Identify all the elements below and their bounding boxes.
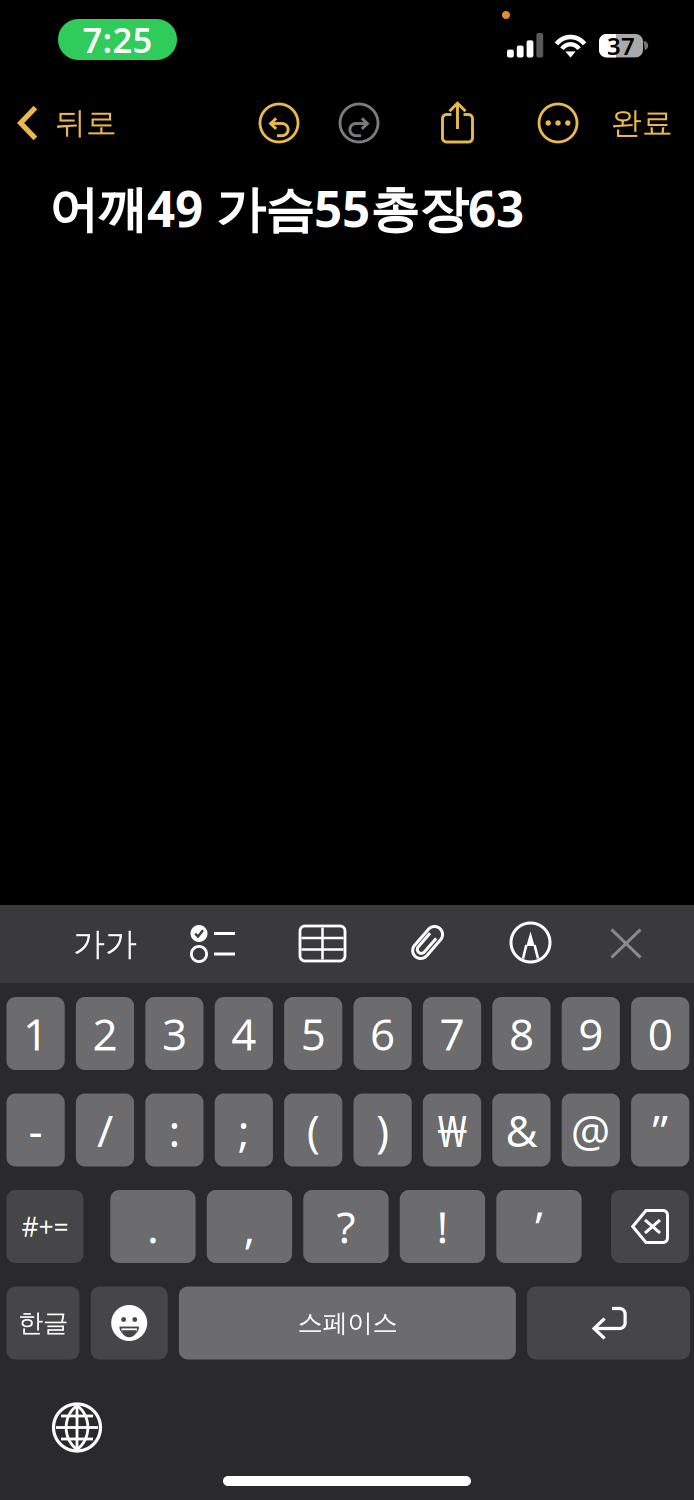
button[interactable]: / xyxy=(76,1093,134,1166)
button[interactable]: 가가 xyxy=(73,921,127,967)
staticText: & xyxy=(505,1101,537,1159)
button[interactable]: ; xyxy=(215,1093,273,1166)
button[interactable]: Emoji xyxy=(91,1286,168,1359)
button[interactable]: 9 xyxy=(562,997,620,1070)
staticText: 5 xyxy=(301,1004,326,1063)
button[interactable]: ) xyxy=(353,1093,412,1166)
button[interactable]: 8 xyxy=(492,997,550,1070)
button[interactable]: Attach xyxy=(410,922,444,963)
staticText: 1 xyxy=(23,1004,48,1063)
staticText: : xyxy=(168,1101,180,1159)
button[interactable]: 2 xyxy=(76,997,134,1070)
button[interactable]: Delete xyxy=(611,1190,689,1263)
staticText: #+= xyxy=(21,1209,68,1244)
staticText: 3 xyxy=(162,1004,187,1063)
button[interactable]: Checklist xyxy=(190,924,236,964)
staticText: 4 xyxy=(231,1004,256,1063)
staticText: 완료 xyxy=(611,104,673,142)
staticText: 8 xyxy=(509,1004,534,1063)
staticText: 어깨49 가슴55총장63 xyxy=(49,175,524,240)
staticText: ₩ xyxy=(437,1101,466,1159)
staticText: 스페이스 xyxy=(297,1307,397,1338)
button[interactable]: ? xyxy=(303,1190,389,1263)
staticText: 37 xyxy=(607,30,635,62)
button[interactable]: & xyxy=(492,1093,550,1166)
button[interactable]: Redo xyxy=(340,104,378,142)
button[interactable]: - xyxy=(6,1093,65,1166)
staticText: 가가 xyxy=(73,924,137,964)
button[interactable]: 4 xyxy=(215,997,273,1070)
staticText: 7:25 xyxy=(82,16,152,62)
staticText: 뒤로 xyxy=(55,104,117,142)
staticText: 한글 xyxy=(18,1307,68,1338)
button[interactable]: Markup xyxy=(511,923,550,962)
staticText: @ xyxy=(571,1101,611,1159)
staticText: / xyxy=(97,1101,113,1159)
button[interactable]: Share xyxy=(441,101,474,144)
button[interactable]: Undo xyxy=(260,104,298,142)
staticText: ) xyxy=(376,1101,389,1159)
button[interactable]: 3 xyxy=(145,997,203,1070)
staticText: ” xyxy=(652,1101,668,1159)
button[interactable]: ( xyxy=(284,1093,342,1166)
button[interactable]: 완료 xyxy=(602,99,682,147)
button[interactable]: 0 xyxy=(631,997,689,1070)
button[interactable]: Close xyxy=(610,928,642,959)
button[interactable]: ! xyxy=(400,1190,485,1263)
button[interactable]: Next keyboard xyxy=(53,1404,100,1451)
staticText: . xyxy=(147,1197,159,1256)
staticText: 0 xyxy=(648,1004,673,1063)
button[interactable]: 1 xyxy=(6,997,65,1070)
button[interactable]: , xyxy=(207,1190,292,1263)
staticText: - xyxy=(29,1101,43,1159)
button[interactable]: ” xyxy=(631,1093,689,1166)
button[interactable]: . xyxy=(110,1190,196,1263)
staticText: 9 xyxy=(578,1004,603,1063)
staticText: ( xyxy=(307,1101,320,1159)
staticText: ! xyxy=(436,1197,448,1256)
staticText: , xyxy=(243,1197,255,1256)
button[interactable]: More xyxy=(539,104,577,142)
button[interactable]: 스페이스 xyxy=(179,1286,516,1359)
button[interactable]: @ xyxy=(562,1093,620,1166)
staticText: 7 xyxy=(439,1004,464,1063)
button[interactable]: Table xyxy=(300,926,345,961)
button[interactable]: 5 xyxy=(284,997,342,1070)
staticText: ’ xyxy=(535,1197,543,1256)
button[interactable]: Return xyxy=(527,1286,690,1359)
button[interactable]: #+= xyxy=(6,1190,83,1263)
staticText: 2 xyxy=(92,1004,117,1063)
staticText: ; xyxy=(238,1101,250,1159)
button[interactable]: 6 xyxy=(353,997,412,1070)
button[interactable]: 뒤로 xyxy=(0,90,131,156)
button[interactable]: : xyxy=(145,1093,203,1166)
button[interactable]: 7 xyxy=(423,997,481,1070)
button[interactable]: 한글 xyxy=(6,1286,79,1359)
button[interactable]: ’ xyxy=(496,1190,582,1263)
staticText: 6 xyxy=(370,1004,395,1063)
button[interactable]: ₩ xyxy=(423,1093,481,1166)
staticText: ? xyxy=(336,1197,355,1256)
